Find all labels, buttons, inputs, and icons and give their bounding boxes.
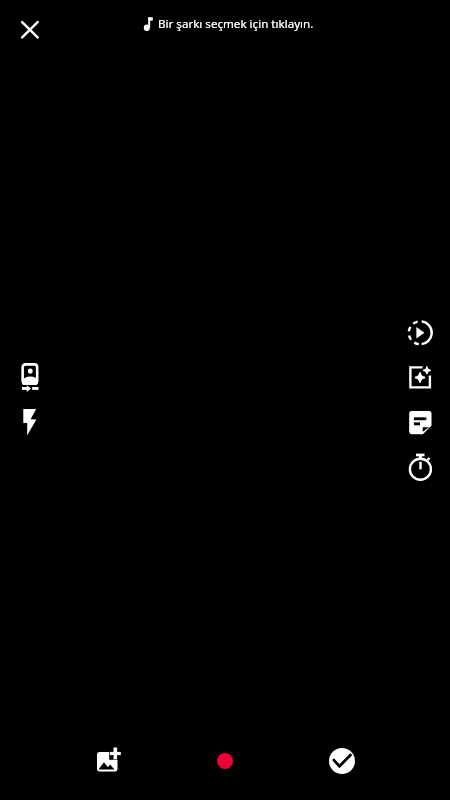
button[interactable]: Switch camera <box>10 354 50 394</box>
button[interactable]: Flash <box>10 401 50 441</box>
button[interactable]: Effects <box>400 358 440 398</box>
button[interactable]: Upload photo <box>87 741 127 781</box>
button[interactable]: Done <box>322 741 362 781</box>
button[interactable]: Timer <box>400 449 440 489</box>
staticText: Bir şarkı seçmek için tıklayın. <box>158 16 314 32</box>
button[interactable]: Captions <box>400 403 440 443</box>
button[interactable]: Record <box>217 753 233 769</box>
button[interactable]: Close <box>10 10 50 50</box>
button[interactable]: Speed <box>400 313 440 353</box>
button[interactable]: Bir şarkı seçmek için tıklayın. <box>143 16 314 32</box>
